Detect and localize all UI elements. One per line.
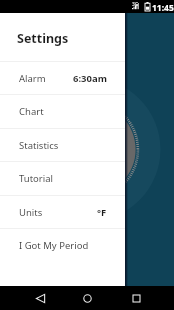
staticText: 11:45: [152, 2, 174, 14]
staticText: Settings: [17, 30, 69, 47]
staticText: I Got My Period: [19, 239, 89, 252]
staticText: Statistics: [19, 139, 59, 152]
button[interactable]: Units: [0, 195, 125, 229]
staticText: Chart: [19, 105, 44, 118]
staticText: Tutorial: [19, 172, 54, 185]
staticText: 3G: [132, 1, 139, 8]
staticText: °F: [97, 206, 107, 219]
staticText: Alarm: [19, 72, 46, 85]
staticText: 6:30am: [73, 72, 107, 85]
button[interactable]: Statistics: [0, 128, 125, 162]
button[interactable]: Recents: [116, 286, 156, 310]
button[interactable]: Alarm: [0, 61, 125, 95]
button[interactable]: Tutorial: [0, 161, 125, 195]
button[interactable]: Back: [20, 286, 60, 310]
button[interactable]: Home: [67, 286, 107, 310]
staticText: Units: [19, 206, 43, 219]
button[interactable]: Chart: [0, 94, 125, 128]
button[interactable]: I Got My Period: [0, 228, 125, 262]
